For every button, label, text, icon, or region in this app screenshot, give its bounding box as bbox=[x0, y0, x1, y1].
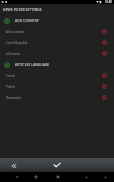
button[interactable]: Back bbox=[14, 174, 20, 180]
button[interactable]: Remove Czech Republic bbox=[100, 38, 109, 47]
button[interactable]: Lithuania bbox=[0, 48, 114, 59]
staticText: All countries bbox=[6, 30, 24, 34]
staticText: ADD COUNTRY bbox=[15, 19, 39, 23]
button[interactable]: Remove Polish bbox=[100, 82, 109, 91]
button[interactable]: Remove Lithuania bbox=[100, 49, 109, 58]
staticText: Czech Republic bbox=[6, 41, 28, 45]
button[interactable]: ADD COUNTRY bbox=[0, 15, 114, 26]
staticText: Czech bbox=[6, 74, 15, 78]
button[interactable]: Volume down bbox=[83, 174, 89, 180]
button[interactable]: Remove All countries bbox=[100, 27, 109, 36]
button[interactable]: All countries bbox=[0, 26, 114, 37]
staticText: ARTICLES LANGUAGE bbox=[15, 63, 50, 67]
button[interactable]: Remove Romanian bbox=[100, 93, 109, 102]
button[interactable]: Confirm bbox=[50, 158, 64, 172]
button[interactable]: ARTICLES LANGUAGE bbox=[0, 59, 114, 70]
button[interactable]: Volume up bbox=[102, 174, 108, 180]
button[interactable]: Czech Republic bbox=[0, 37, 114, 48]
staticText: Romanian bbox=[6, 96, 21, 100]
staticText: Lithuania bbox=[6, 52, 20, 56]
button[interactable]: Polish bbox=[0, 81, 114, 92]
button[interactable]: Home bbox=[33, 174, 39, 180]
button[interactable]: Recent apps bbox=[55, 174, 61, 180]
staticText: NEWS FILTER SETTINGS bbox=[3, 7, 42, 11]
staticText: Polish bbox=[6, 85, 15, 89]
button[interactable]: Collapse bbox=[8, 160, 19, 171]
button[interactable]: Czech bbox=[0, 70, 114, 81]
button[interactable]: Romanian bbox=[0, 92, 114, 103]
button[interactable]: Remove Czech bbox=[100, 71, 109, 80]
staticText: 16:30 bbox=[105, 0, 112, 4]
